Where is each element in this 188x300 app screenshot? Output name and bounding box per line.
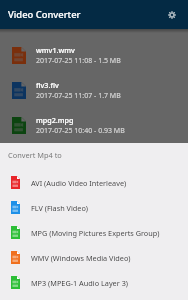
button[interactable]: AVI (Audio Video Interleave) [0, 170, 188, 195]
staticText: flv3.flv [36, 80, 59, 90]
button[interactable]: MPG (Moving Pictures Experts Group) [0, 220, 188, 245]
staticText: AVI (Audio Video Interleave) [31, 178, 127, 188]
staticText: 2017-07-25 10:40 - 0.93 MB [36, 126, 125, 136]
button[interactable]: flv3.flv [0, 73, 188, 108]
staticText: Video Converter [8, 8, 159, 21]
staticText: 2017-07-25 11:07 - 1.7 MB [36, 91, 121, 101]
staticText: MPG (Moving Pictures Experts Group) [31, 228, 160, 238]
button[interactable]: MP3 (MPEG-1 Audio Layer 3) [0, 270, 188, 295]
staticText: mpg2.mpg [36, 115, 74, 125]
button[interactable]: mpg2.mpg [0, 108, 188, 143]
staticText: wmv1.wmv [36, 45, 75, 55]
staticText: 2017-07-25 11:08 - 1.5 MB [36, 56, 121, 66]
button[interactable]: wmv1.wmv [0, 38, 188, 73]
button[interactable]: Settings [159, 0, 185, 29]
staticText: WMV (Windows Media Video) [31, 253, 131, 263]
staticText: MP3 (MPEG-1 Audio Layer 3) [31, 278, 128, 288]
button[interactable]: FLV (Flash Video) [0, 195, 188, 220]
staticText: Convert Mp4 to [8, 150, 62, 160]
staticText: FLV (Flash Video) [31, 203, 89, 213]
button[interactable]: WMV (Windows Media Video) [0, 245, 188, 270]
